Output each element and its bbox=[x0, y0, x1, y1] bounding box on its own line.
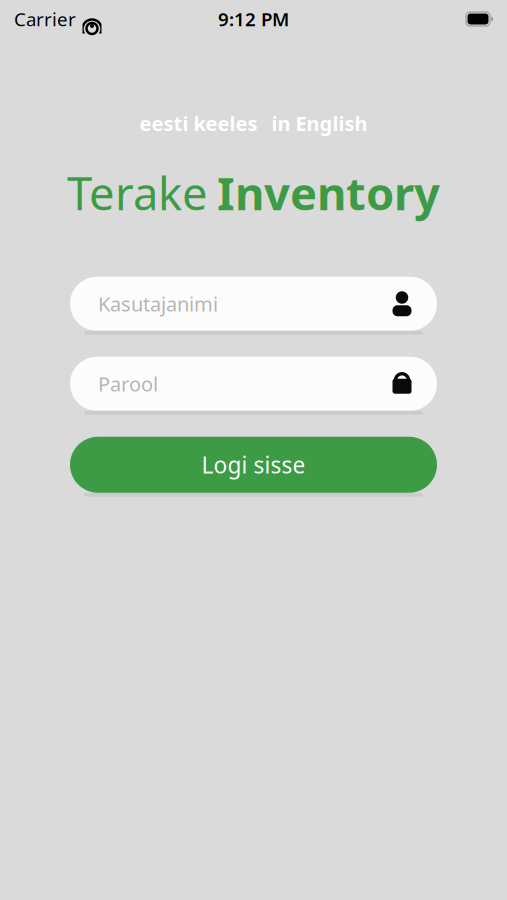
button[interactable]: Parool bbox=[70, 357, 437, 411]
staticText: 9:12 PM bbox=[218, 7, 289, 31]
button[interactable]: in English bbox=[271, 110, 367, 137]
staticText: Parool bbox=[98, 370, 158, 397]
staticText: Logi sisse bbox=[201, 450, 305, 480]
staticText: Carrier bbox=[14, 7, 76, 31]
staticText: Kasutajanimi bbox=[98, 290, 218, 317]
button[interactable]: Kasutajanimi bbox=[70, 277, 437, 331]
button[interactable]: eesti keeles bbox=[139, 110, 257, 137]
staticText: in English bbox=[271, 110, 367, 137]
button[interactable]: Logi sisse bbox=[70, 437, 437, 493]
staticText: eesti keeles bbox=[139, 110, 257, 137]
staticText: Terake bbox=[67, 163, 208, 223]
staticText: Inventory bbox=[217, 163, 440, 223]
